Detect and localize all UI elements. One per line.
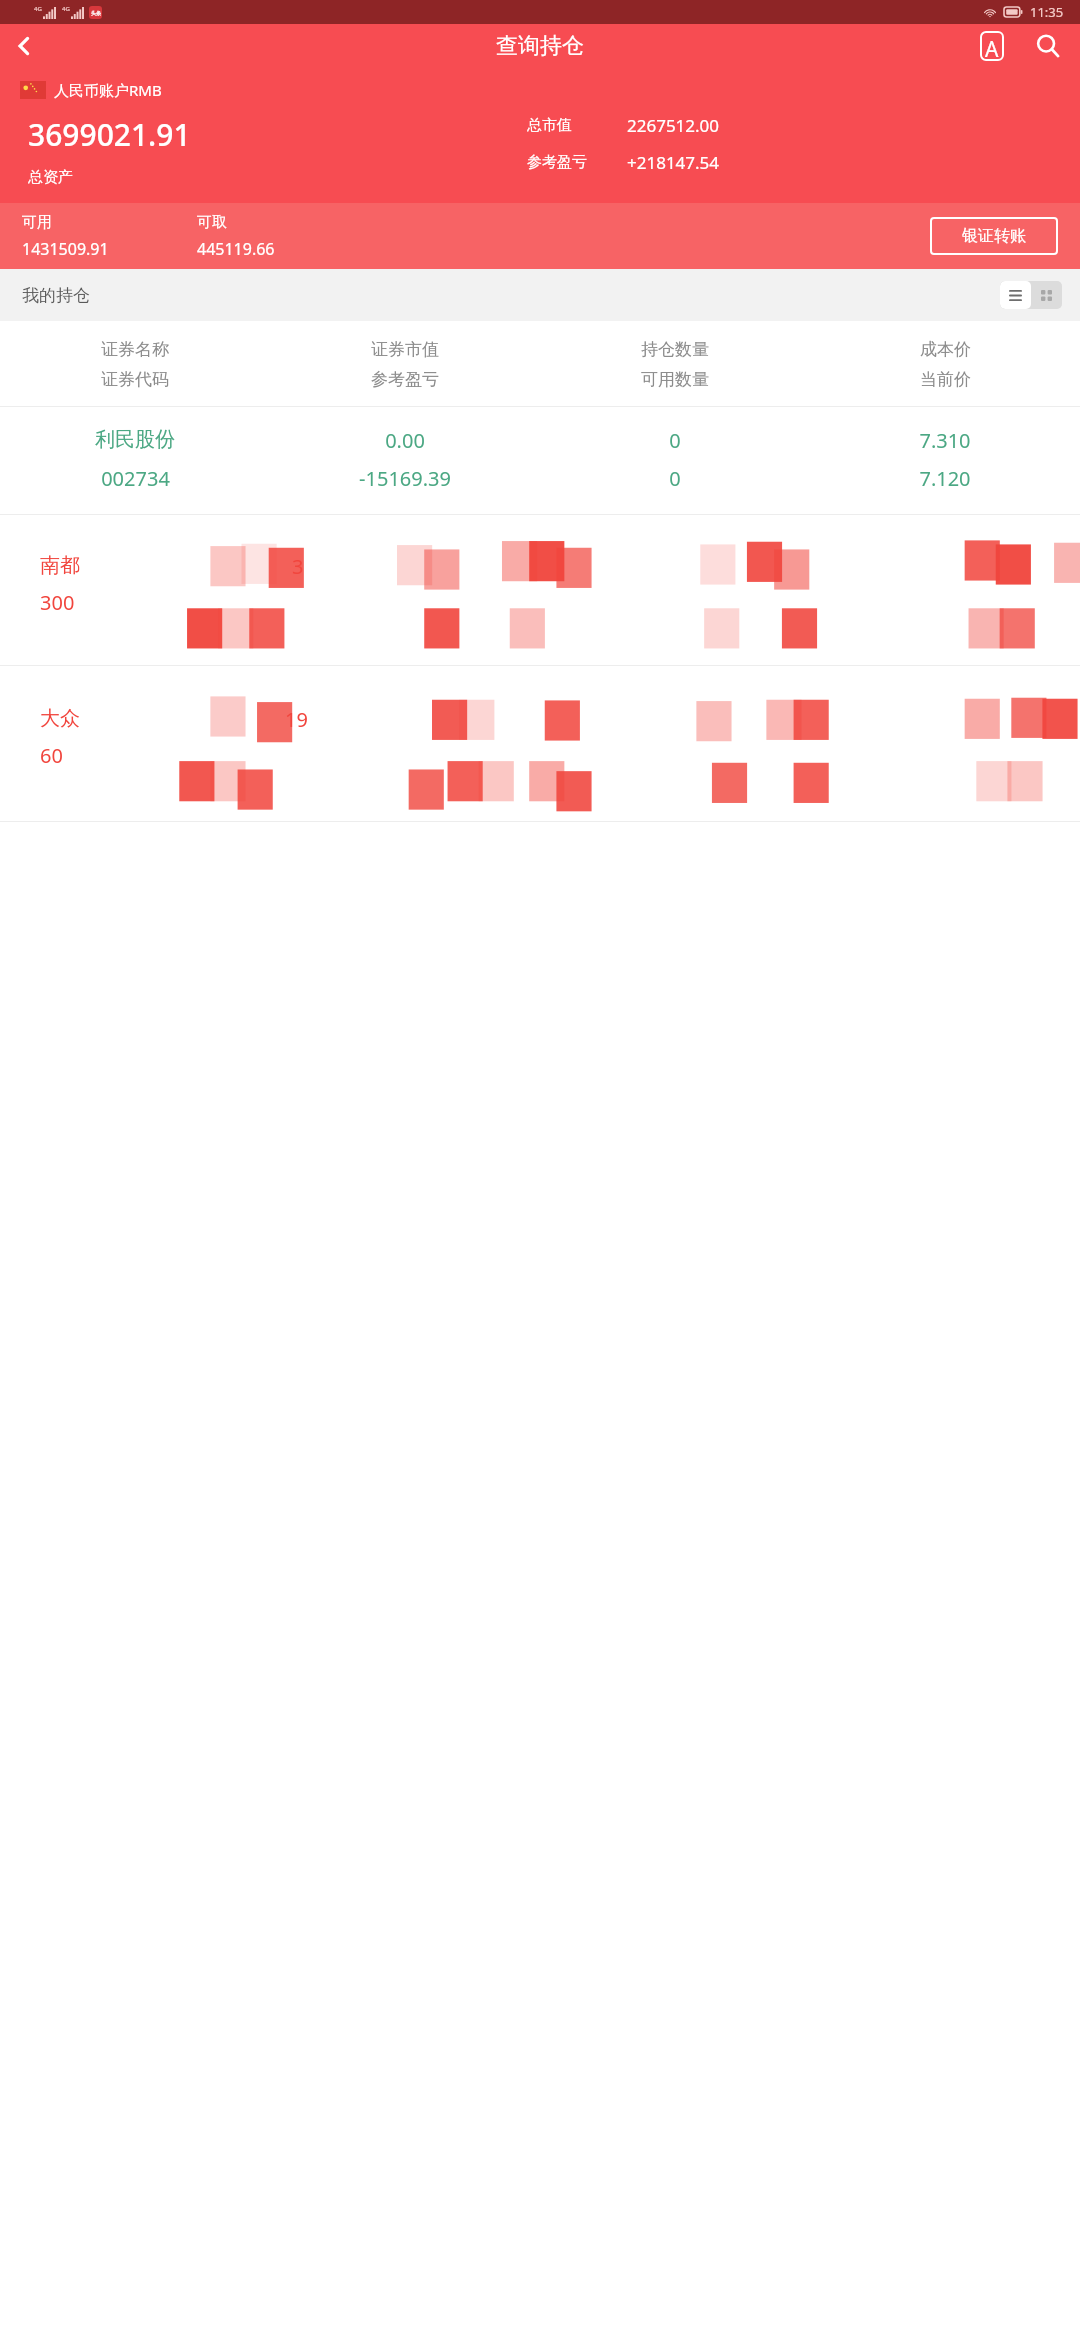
staticText: 可用数量 — [641, 369, 709, 390]
staticText: 可取 — [197, 213, 227, 232]
staticText: 3699021.91 — [28, 114, 191, 155]
staticText: 南都 — [40, 553, 80, 578]
button[interactable]: 银证转账 — [930, 217, 1058, 255]
staticText: 7.120 — [919, 465, 971, 492]
staticText: 成本价 — [920, 339, 971, 360]
staticText: 银证转账 — [962, 226, 1026, 246]
staticText: 4G — [62, 5, 70, 13]
staticText: 人民币账户RMB — [54, 80, 162, 100]
staticText: 查询持仓 — [496, 32, 584, 60]
staticText: 002734 — [101, 465, 170, 492]
staticText: 证券名称 — [101, 339, 169, 360]
staticText: A — [985, 35, 999, 61]
staticText: 参考盈亏 — [527, 153, 627, 172]
button[interactable]: Search — [1026, 24, 1070, 67]
staticText: 0 — [669, 427, 681, 454]
staticText: 7.310 — [919, 427, 971, 454]
staticText: 2267512.00 — [627, 114, 720, 137]
staticText: 60 — [40, 742, 63, 769]
staticText: -15169.39 — [359, 465, 451, 492]
button[interactable]: Back — [0, 24, 48, 67]
staticText: 总市值 — [527, 116, 627, 135]
staticText: +218147.54 — [627, 151, 720, 174]
staticText: 0.00 — [385, 427, 425, 454]
button[interactable]: Grid view — [1031, 281, 1062, 309]
staticText: 持仓数量 — [641, 339, 709, 360]
staticText: 445119.66 — [197, 238, 275, 260]
staticText: 1431509.91 — [22, 238, 109, 260]
button[interactable]: 大众 — [0, 666, 1080, 821]
staticText: 大众 — [40, 706, 80, 731]
staticText: 参考盈亏 — [371, 369, 439, 390]
staticText: 我的持仓 — [22, 285, 90, 306]
staticText: 3 — [292, 553, 304, 580]
staticText: 19 — [285, 706, 308, 733]
button[interactable]: 利民股份 — [0, 407, 1080, 514]
staticText: 300 — [40, 589, 75, 616]
button[interactable]: 南都 — [0, 515, 1080, 665]
staticText: 总资产 — [28, 168, 73, 187]
staticText: 头条 — [91, 10, 101, 16]
staticText: 证券代码 — [101, 369, 169, 390]
staticText: 利民股份 — [95, 427, 175, 452]
staticText: 证券市值 — [371, 339, 439, 360]
button[interactable]: Font size — [970, 24, 1014, 67]
staticText: 11:35 — [1030, 3, 1064, 21]
staticText: 4G — [34, 5, 42, 13]
staticText: 当前价 — [920, 369, 971, 390]
button[interactable]: List view — [1000, 281, 1031, 309]
staticText: 可用 — [22, 213, 52, 232]
staticText: 0 — [669, 465, 681, 492]
